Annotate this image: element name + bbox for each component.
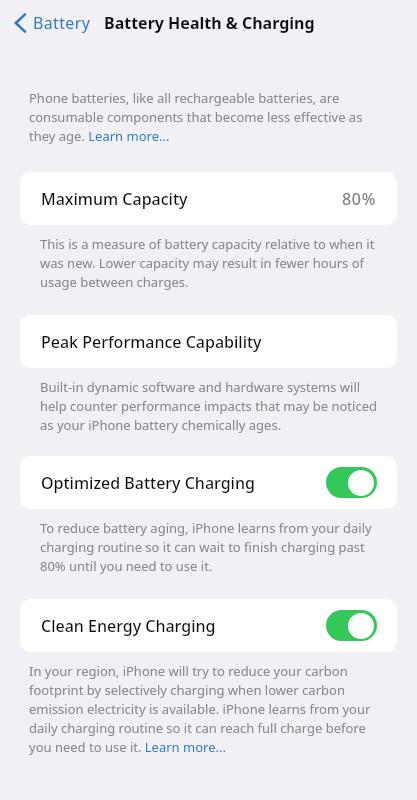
staticText: Peak Performance Capability [41, 331, 262, 353]
staticText: Clean Energy Charging [41, 615, 216, 637]
staticText: Maximum Capacity [41, 188, 188, 210]
staticText: In your region, iPhone will try to reduc… [29, 661, 380, 756]
button[interactable]: Peak Performance Capability [20, 315, 397, 368]
staticText: Battery [33, 12, 91, 34]
button[interactable]: Toggle switch, on [326, 467, 377, 498]
button[interactable]: Toggle switch, on [326, 610, 377, 641]
staticText: 80% [342, 188, 377, 210]
staticText: This is a measure of battery capacity re… [40, 234, 380, 291]
staticText: To reduce battery aging, iPhone learns f… [40, 518, 380, 575]
button[interactable]: Battery [9, 0, 91, 46]
button[interactable]: Clean Energy Charging [20, 599, 397, 652]
staticText: Battery Health & Charging [104, 12, 315, 34]
staticText: Phone batteries, like all rechargeable b… [29, 88, 380, 145]
button[interactable]: Optimized Battery Charging [20, 456, 397, 509]
staticText: Optimized Battery Charging [41, 472, 255, 494]
button[interactable]: Maximum Capacity [20, 172, 397, 225]
staticText: Built-in dynamic software and hardware s… [40, 377, 380, 434]
